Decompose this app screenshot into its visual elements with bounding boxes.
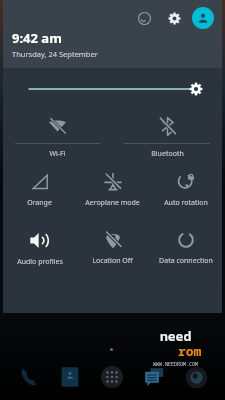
button[interactable]: Contacts bbox=[49, 357, 91, 397]
button[interactable]: Apps bbox=[91, 357, 133, 397]
button[interactable]: Brightness auto bbox=[133, 7, 155, 29]
staticText: Data connection bbox=[159, 256, 213, 266]
staticText: Audio profiles bbox=[17, 257, 63, 267]
staticText: WWW.NEEDROM.COM bbox=[153, 361, 199, 368]
button[interactable]: Browser bbox=[175, 357, 217, 397]
button[interactable]: Phone bbox=[8, 357, 49, 397]
staticText: Wi-Fi bbox=[49, 149, 66, 159]
button[interactable]: Audio profiles bbox=[3, 224, 76, 282]
button[interactable]: Data connection bbox=[149, 224, 222, 282]
staticText: 9:42 am bbox=[12, 29, 62, 47]
button[interactable]: Settings bbox=[163, 7, 185, 29]
button[interactable]: Auto rotation bbox=[149, 166, 222, 224]
button[interactable]: User profile bbox=[192, 7, 214, 29]
staticText: rom bbox=[178, 342, 202, 360]
staticText: Location Off bbox=[92, 256, 133, 266]
staticText: Bluetooth bbox=[151, 149, 184, 159]
button[interactable]: Wi-Fi bbox=[3, 110, 112, 166]
button[interactable]: Orange bbox=[3, 166, 76, 224]
staticText: Aeroplane mode bbox=[85, 198, 140, 208]
button[interactable]: Brightness slider bbox=[3, 68, 222, 110]
staticText: Orange bbox=[27, 198, 52, 208]
button[interactable]: Bluetooth bbox=[112, 110, 222, 166]
button[interactable]: Messages bbox=[133, 357, 175, 397]
button[interactable]: Location Off bbox=[76, 224, 149, 282]
staticText: need bbox=[160, 327, 192, 345]
button[interactable]: Aeroplane mode bbox=[76, 166, 149, 224]
staticText: Thursday, 24 September bbox=[12, 49, 98, 59]
staticText: Auto rotation bbox=[164, 198, 208, 208]
